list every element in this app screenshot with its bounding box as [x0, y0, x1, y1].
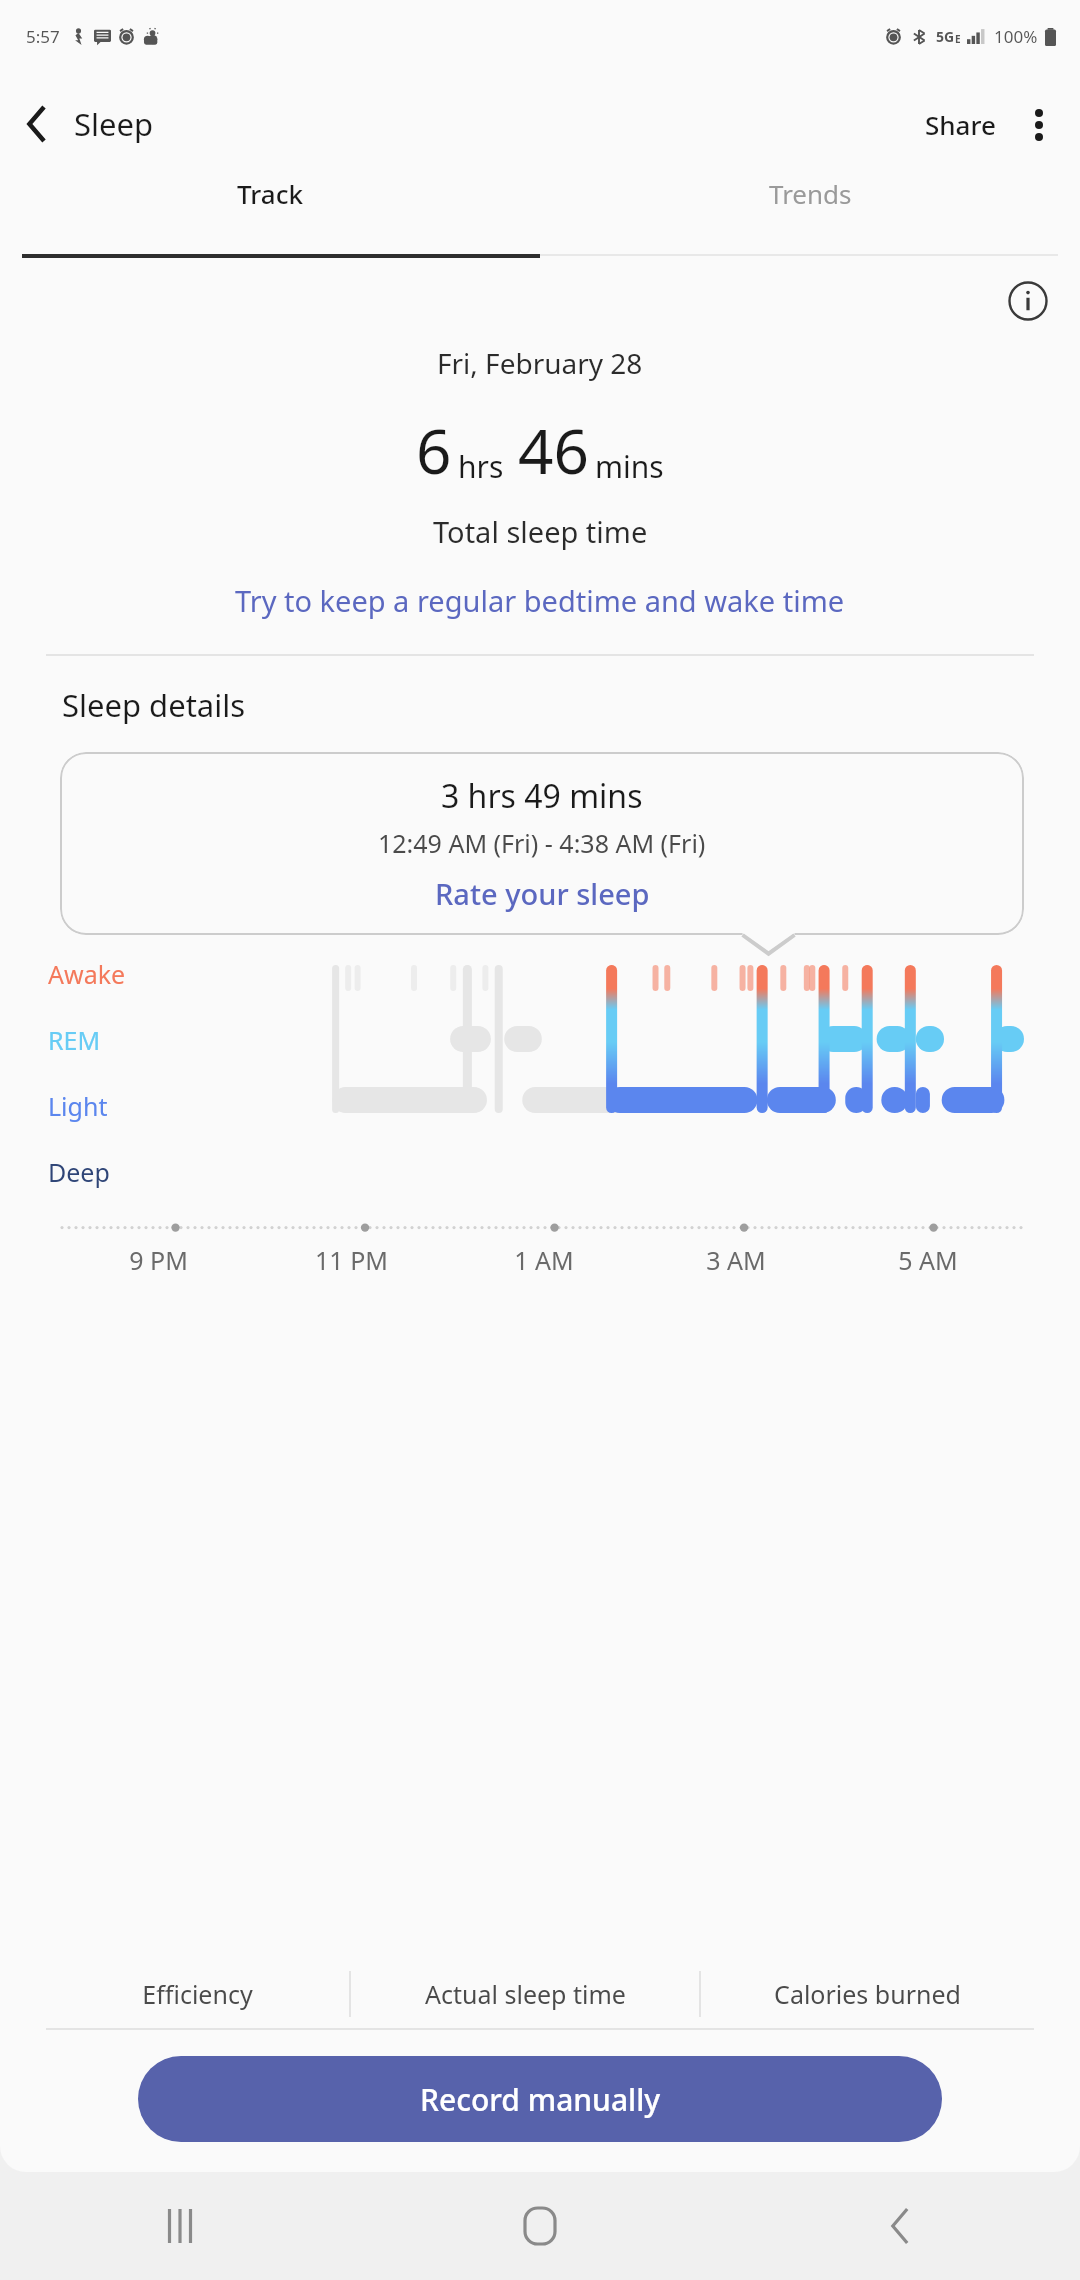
- button[interactable]: Share: [913, 93, 1008, 156]
- staticText: Sleep details: [62, 684, 246, 726]
- staticText: mins: [595, 446, 664, 487]
- staticText: Trends: [769, 176, 852, 211]
- staticText: 5 AM: [898, 1243, 958, 1277]
- staticText: 46: [518, 408, 589, 492]
- button[interactable]: More options: [1008, 94, 1070, 156]
- staticText: 5G: [936, 27, 955, 46]
- button[interactable]: Track: [0, 176, 540, 211]
- staticText: 5:57: [26, 25, 60, 48]
- staticText: hrs: [458, 446, 504, 487]
- button[interactable]: Efficiency: [46, 1960, 349, 2028]
- staticText: Efficiency: [142, 1977, 253, 2011]
- staticText: Rate your sleep: [435, 874, 650, 913]
- staticText: Actual sleep time: [425, 1977, 626, 2011]
- staticText: Deep: [48, 1155, 110, 1189]
- staticText: Share: [925, 107, 996, 142]
- button[interactable]: Trends: [540, 176, 1080, 211]
- button[interactable]: Home: [360, 2172, 720, 2280]
- button[interactable]: Calories burned: [701, 1960, 1034, 2028]
- staticText: 3 hrs 49 mins: [441, 774, 643, 818]
- button[interactable]: Recent apps: [0, 2172, 360, 2280]
- button[interactable]: Actual sleep time: [351, 1960, 699, 2028]
- staticText: 100%: [994, 25, 1038, 48]
- staticText: 1 AM: [514, 1243, 574, 1277]
- staticText: Fri, February 28: [437, 344, 643, 382]
- button[interactable]: 3 hrs 49 mins: [60, 752, 1024, 935]
- staticText: Try to keep a regular bedtime and wake t…: [235, 581, 845, 620]
- staticText: E: [955, 32, 961, 46]
- staticText: Track: [237, 176, 303, 211]
- staticText: 6: [416, 408, 452, 492]
- button[interactable]: Try to keep a regular bedtime and wake t…: [227, 577, 853, 624]
- staticText: 9 PM: [129, 1243, 188, 1277]
- button[interactable]: Information: [998, 271, 1058, 331]
- staticText: 12:49 AM (Fri) - 4:38 AM (Fri): [378, 826, 706, 860]
- button[interactable]: Record manually: [138, 2056, 942, 2142]
- staticText: Sleep: [74, 103, 154, 145]
- staticText: 11 PM: [315, 1243, 388, 1277]
- staticText: Record manually: [420, 2079, 661, 2120]
- staticText: Total sleep time: [433, 512, 648, 551]
- button[interactable]: Back: [720, 2172, 1080, 2280]
- staticText: Light: [48, 1089, 108, 1123]
- button[interactable]: Back: [0, 87, 74, 161]
- staticText: Awake: [48, 957, 126, 991]
- staticText: REM: [48, 1023, 101, 1057]
- staticText: 3 AM: [706, 1243, 766, 1277]
- staticText: Calories burned: [774, 1977, 961, 2011]
